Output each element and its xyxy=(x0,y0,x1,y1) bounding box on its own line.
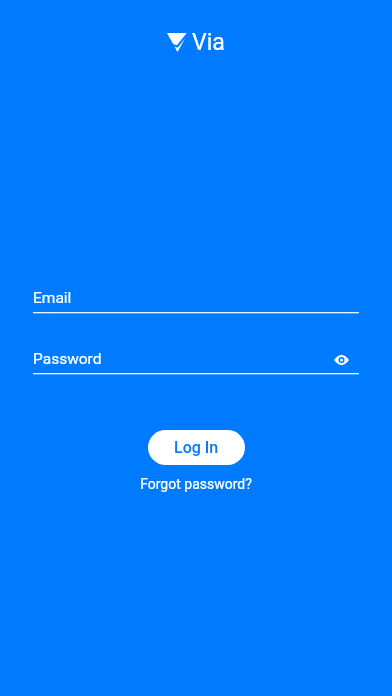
button[interactable]: Show password xyxy=(329,348,353,372)
staticText: Log In xyxy=(174,438,219,457)
button[interactable]: Log In xyxy=(148,430,245,465)
staticText: Password xyxy=(33,350,102,368)
staticText: Forgot password? xyxy=(140,476,252,492)
staticText: Email xyxy=(33,289,72,307)
staticText: Via xyxy=(192,29,225,56)
button[interactable]: Forgot password? xyxy=(134,473,258,495)
